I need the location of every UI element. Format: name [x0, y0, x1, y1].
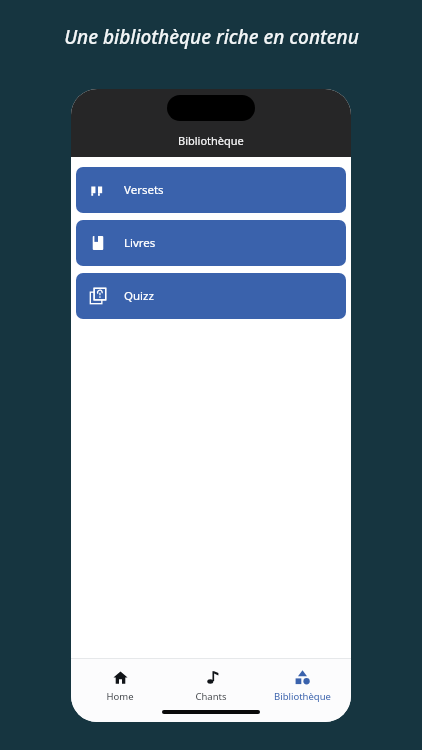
staticText: Une bibliothèque riche en contenu [64, 24, 359, 50]
staticText: Bibliothèque [178, 133, 244, 148]
button[interactable]: Home [78, 658, 162, 722]
staticText: Chants [195, 690, 227, 703]
button[interactable]: Bibliothèque [260, 658, 344, 722]
staticText: Bibliothèque [274, 690, 331, 703]
staticText: Versets [124, 182, 164, 198]
button[interactable]: Livres [76, 220, 346, 266]
staticText: Livres [124, 235, 156, 251]
button[interactable]: Chants [169, 658, 253, 722]
staticText: Quizz [124, 288, 154, 304]
button[interactable]: Quizz [76, 273, 346, 319]
button[interactable]: Versets [76, 167, 346, 213]
staticText: Home [106, 690, 134, 703]
